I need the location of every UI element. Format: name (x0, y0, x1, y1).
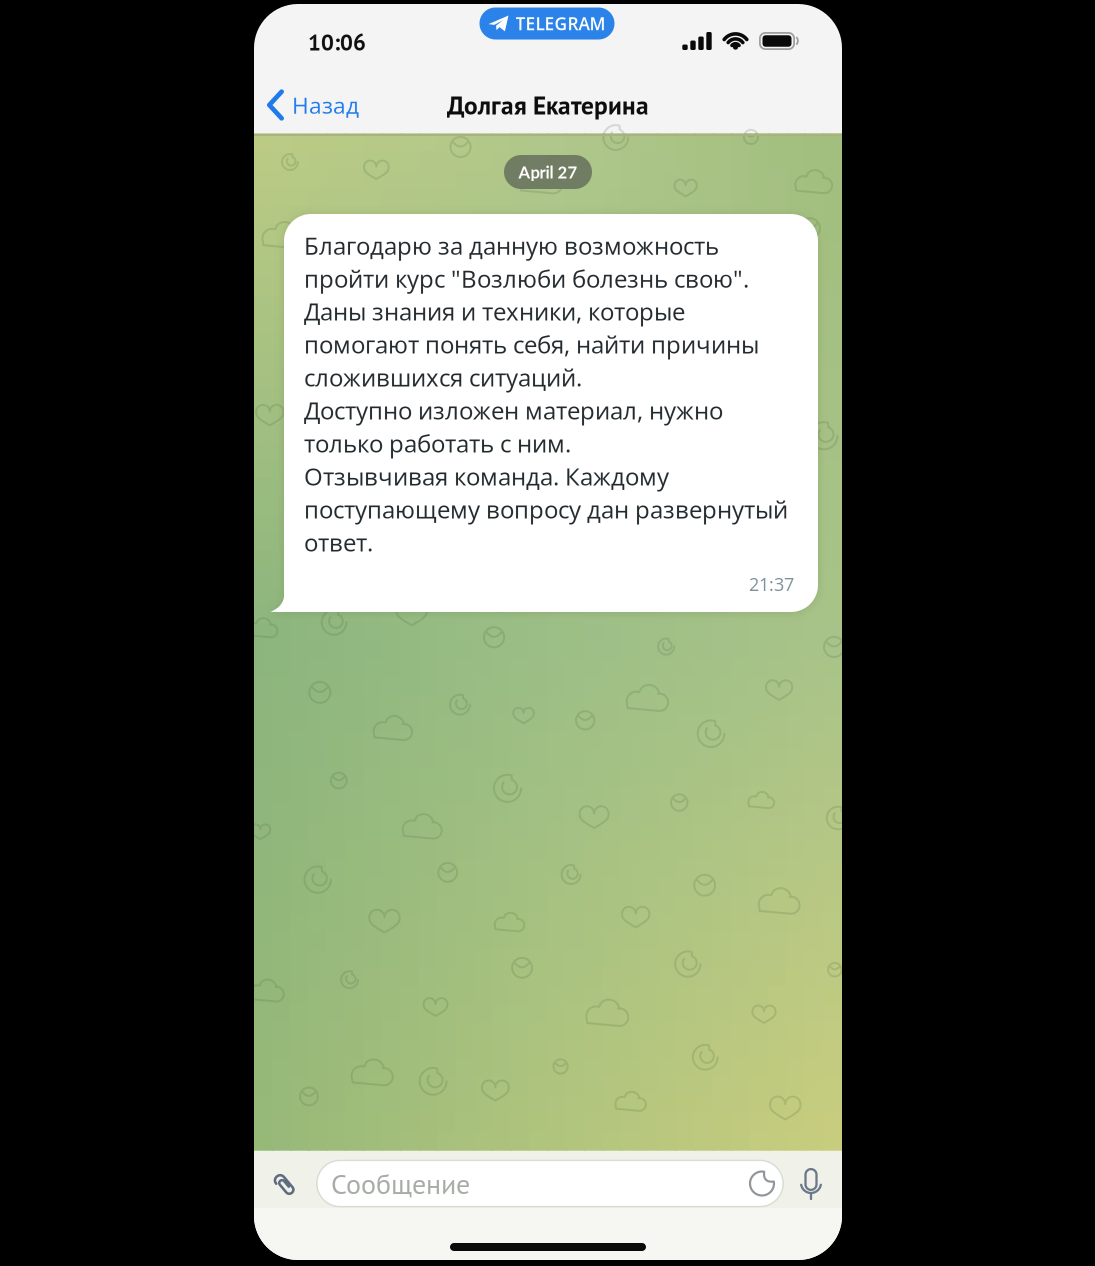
staticText: Долгая Екатерина (447, 89, 649, 121)
staticText: 21:37 (749, 572, 794, 596)
button[interactable]: Back (267, 89, 359, 120)
button[interactable]: Message (316, 1159, 784, 1207)
button[interactable]: Telegram (479, 7, 614, 39)
staticText: TELEGRAM (515, 12, 605, 35)
staticText: Сообщение (331, 1165, 470, 1202)
staticText: Назад (292, 90, 359, 120)
button[interactable]: Record voice message (799, 1168, 823, 1202)
staticText: Благодарю за данную возможность пройти к… (304, 229, 788, 558)
button[interactable]: Attach file (268, 1168, 300, 1202)
staticText: 10:06 (308, 27, 366, 57)
staticText: April 27 (518, 162, 577, 182)
